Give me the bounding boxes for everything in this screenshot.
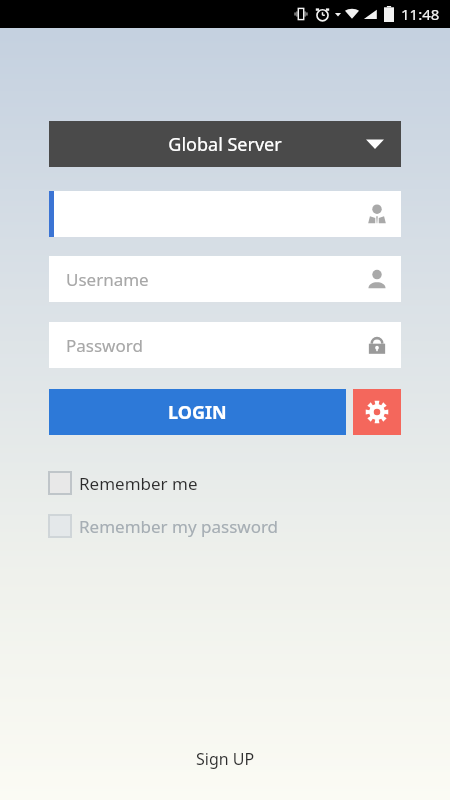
staticText: 11:48: [401, 4, 440, 24]
staticText: Remember me: [79, 472, 198, 495]
button[interactable]: Remember my password: [49, 511, 279, 541]
staticText: Password: [66, 334, 143, 357]
staticText: Sign UP: [196, 748, 255, 770]
staticText: Username: [66, 268, 149, 291]
button[interactable]: Global Server: [49, 121, 401, 167]
button[interactable]: Password: [49, 322, 401, 368]
staticText: LOGIN: [168, 400, 227, 425]
staticText: Global Server: [168, 132, 282, 157]
button[interactable]: Settings: [353, 389, 401, 435]
button[interactable]: Remember me: [49, 468, 198, 498]
staticText: Remember my password: [79, 515, 279, 538]
button[interactable]: Username: [49, 256, 401, 302]
button[interactable]: LOGIN: [49, 389, 346, 435]
button[interactable]: [49, 191, 401, 237]
button[interactable]: Sign UP: [176, 742, 275, 776]
